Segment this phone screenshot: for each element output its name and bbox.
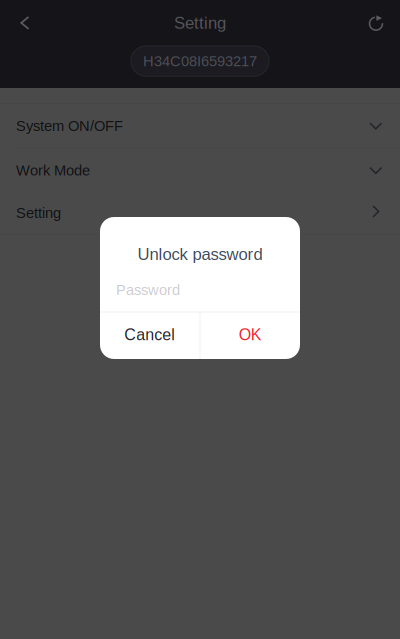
button[interactable]: Cancel — [100, 312, 199, 359]
staticText: Unlock password — [137, 245, 262, 264]
staticText: H34C08I6593217 — [143, 53, 257, 69]
button[interactable]: System ON/OFF — [0, 104, 400, 148]
button[interactable]: Refresh — [354, 1, 398, 45]
button[interactable]: Back — [3, 1, 47, 45]
staticText: Password — [116, 282, 180, 298]
staticText: Work Mode — [16, 162, 90, 179]
button[interactable]: Work Mode — [0, 149, 400, 192]
staticText: Cancel — [124, 326, 175, 344]
staticText: OK — [239, 326, 262, 344]
staticText: Setting — [174, 14, 226, 32]
button[interactable]: Setting — [0, 192, 400, 234]
button[interactable]: OK — [200, 312, 300, 359]
button[interactable]: H34C08I6593217 — [131, 46, 269, 76]
staticText: Setting — [16, 205, 61, 221]
staticText: System ON/OFF — [16, 118, 123, 134]
